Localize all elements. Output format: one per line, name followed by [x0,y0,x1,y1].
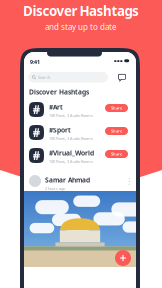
staticText: # [32,101,40,117]
staticText: Share [111,151,122,157]
staticText: ▪▪▪ [114,58,123,63]
staticText: 2 hours ago [45,186,65,191]
staticText: #Art [49,102,63,111]
staticText: ⋮ [125,176,133,186]
button[interactable]: Share [105,104,128,112]
staticText: Discover Hashtags [29,87,89,96]
button[interactable]: Share [105,150,128,158]
button[interactable]: Create post [115,250,131,266]
staticText: #Virual_World [49,148,94,157]
staticText: Search [38,75,50,80]
staticText: 9:41 [30,58,40,66]
staticText: Share [111,128,122,134]
staticText: Samar Ahmad [45,175,90,184]
button[interactable]: Share [105,127,128,135]
staticText: #Sport [49,125,71,134]
button[interactable]: Messages [118,73,126,81]
staticText: 10K Posts, 3 Audio Rooms [49,136,93,141]
button[interactable]: More [126,176,132,186]
staticText: # [32,147,40,163]
staticText: and stay up to date [45,22,117,32]
staticText: Discover Hashtags [23,2,139,20]
staticText: 10K Posts, 3 Audio Rooms [49,113,93,118]
staticText: 10K Posts, 3 Audio Rooms [49,159,93,164]
staticText: Share [111,105,122,111]
staticText: # [32,124,40,140]
